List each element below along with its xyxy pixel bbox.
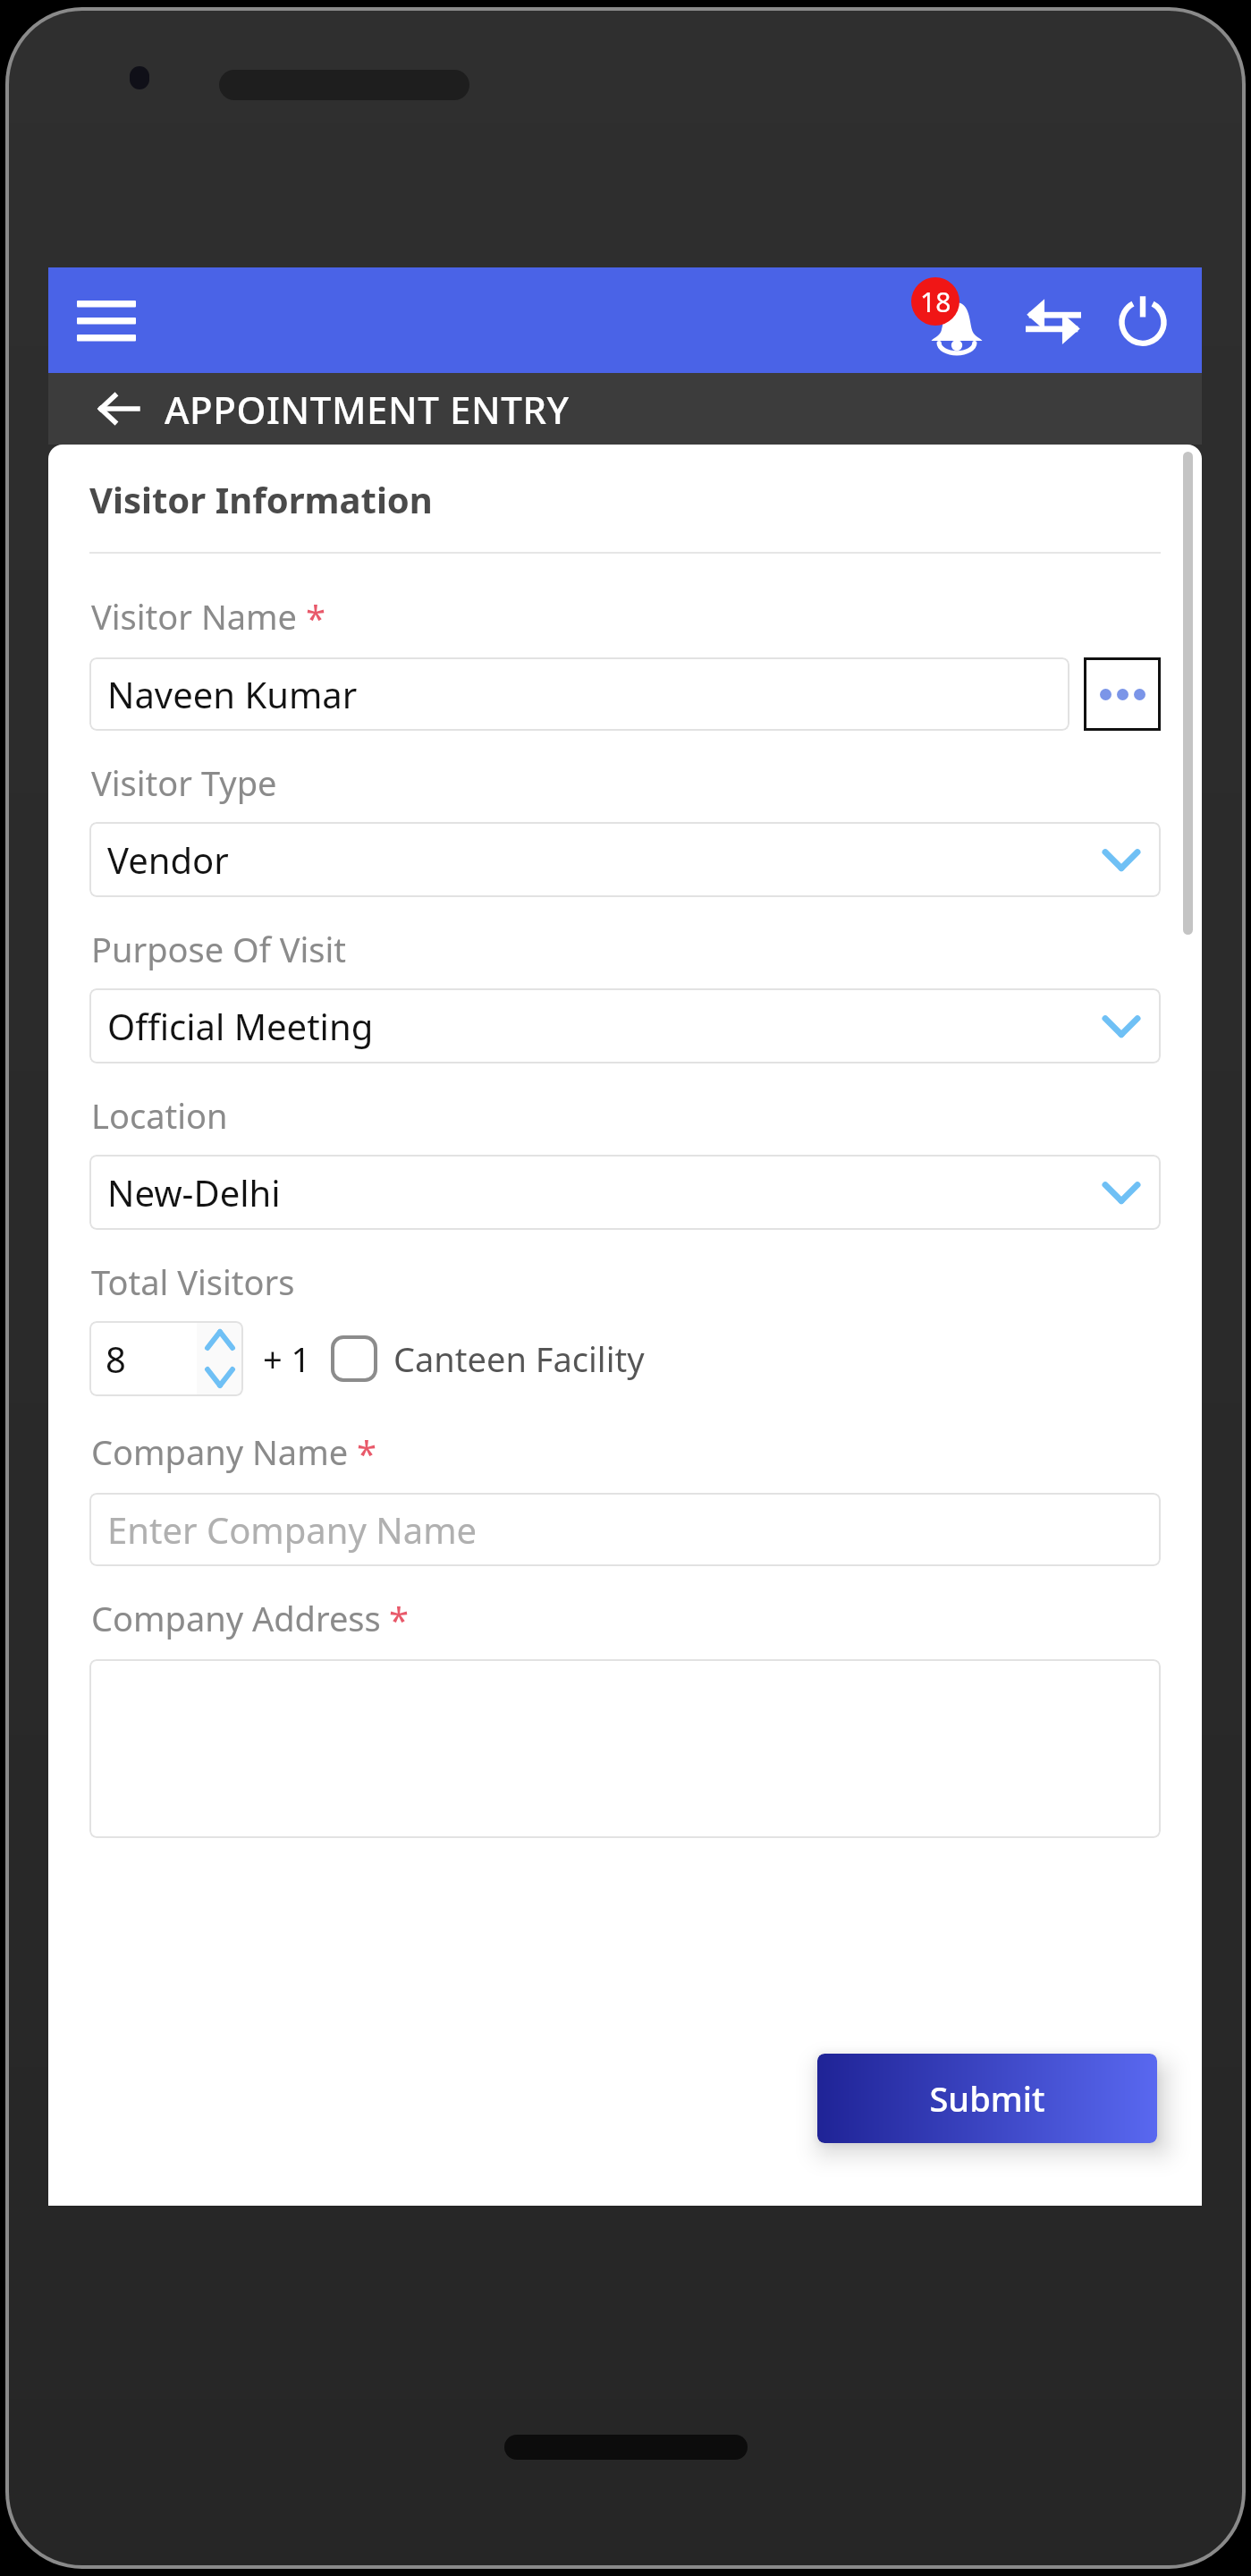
staticText: Naveen Kumar <box>107 670 358 718</box>
staticText: Canteen Facility <box>393 1335 645 1382</box>
button[interactable]: Decrease visitors <box>197 1359 243 1396</box>
button[interactable]: Enter Company Name <box>89 1493 1161 1566</box>
staticText: + 1 <box>263 1335 311 1382</box>
staticText: APPOINTMENT ENTRY <box>165 384 570 435</box>
staticText: Visitor Information <box>89 475 433 523</box>
staticText: Location <box>91 1092 228 1139</box>
staticText: Visitor Type <box>91 759 277 806</box>
button[interactable]: Official Meeting <box>89 988 1161 1063</box>
staticText: Vendor <box>107 835 229 884</box>
staticText: * <box>357 1428 377 1477</box>
staticText: New-Delhi <box>107 1168 281 1216</box>
button[interactable] <box>89 1659 1161 1838</box>
button[interactable]: More visitor options <box>1084 657 1161 731</box>
staticText: Visitor Name <box>91 593 298 640</box>
button[interactable]: Submit <box>817 2054 1157 2143</box>
staticText: Official Meeting <box>107 1002 374 1050</box>
button[interactable]: Log out <box>1100 277 1186 363</box>
staticText: Company Address <box>91 1595 381 1641</box>
button[interactable]: Vendor <box>89 822 1161 897</box>
staticText: Purpose Of Visit <box>91 926 347 972</box>
button[interactable]: Switch account <box>1010 277 1096 363</box>
button[interactable]: Canteen Facility <box>331 1335 645 1382</box>
staticText: * <box>306 593 326 641</box>
button[interactable]: Notifications, 18 unread <box>909 275 1005 365</box>
button[interactable]: Increase visitors <box>197 1321 243 1359</box>
button[interactable]: Naveen Kumar <box>89 657 1069 731</box>
staticText: Company Name <box>91 1428 349 1475</box>
button[interactable]: Open navigation menu <box>68 282 145 359</box>
staticText: Enter Company Name <box>107 1505 478 1554</box>
staticText: 8 <box>106 1335 126 1383</box>
staticText: Total Visitors <box>91 1258 295 1305</box>
staticText: Submit <box>929 2075 1045 2122</box>
staticText: * <box>389 1595 410 1643</box>
button[interactable]: New-Delhi <box>89 1155 1161 1230</box>
staticText: 18 <box>920 284 951 320</box>
button[interactable]: Back <box>91 382 145 436</box>
button[interactable]: 8 <box>89 1321 197 1396</box>
